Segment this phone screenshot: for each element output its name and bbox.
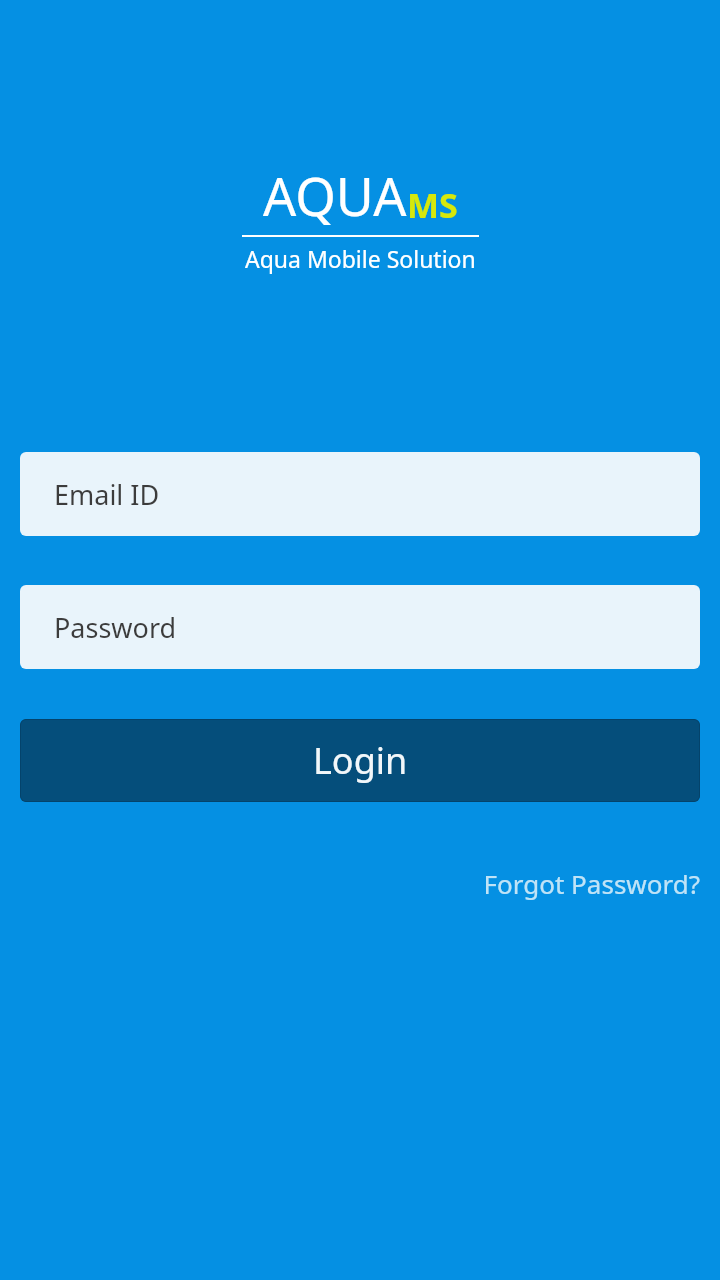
- button[interactable]: Login: [20, 719, 700, 802]
- staticText: Password: [54, 609, 177, 646]
- button[interactable]: Forgot Password?: [483, 862, 720, 905]
- staticText: Email ID: [54, 476, 160, 513]
- staticText: Forgot Password?: [483, 866, 700, 901]
- staticText: AQUA: [263, 160, 407, 231]
- button[interactable]: Email ID: [20, 452, 700, 536]
- staticText: MS: [407, 182, 458, 228]
- staticText: Aqua Mobile Solution: [245, 243, 476, 274]
- staticText: Login: [313, 736, 408, 785]
- button[interactable]: Password: [20, 585, 700, 669]
